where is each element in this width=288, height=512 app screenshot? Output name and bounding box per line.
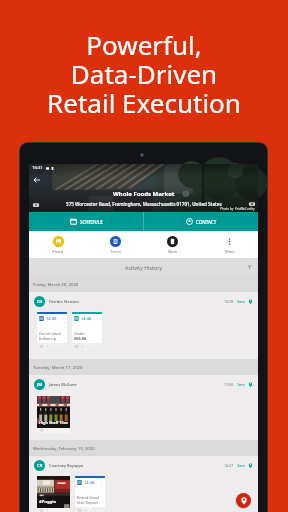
staticText: Form <box>111 249 121 254</box>
staticText: $66.06 <box>74 336 87 341</box>
staticText: Courtney Rayappu <box>49 463 84 468</box>
button[interactable]: DS <box>29 292 258 311</box>
staticText: Wednesday, February 19, 2020 <box>33 445 95 451</box>
staticText: CONTACT <box>196 219 217 225</box>
button[interactable]: CR <box>29 456 258 475</box>
button[interactable]: Check in <box>236 493 251 508</box>
staticText: 575 Worcester Road, Framingham, Massachu… <box>66 201 222 207</box>
staticText: Note <box>168 249 178 254</box>
staticText: CR <box>37 463 43 469</box>
staticText: High Shelf 16oz <box>39 420 68 425</box>
staticText: follow-up <box>39 336 57 341</box>
button[interactable]: Back <box>32 175 41 184</box>
button[interactable]: #Poggio <box>37 476 70 512</box>
button[interactable]: CONTACT <box>144 212 258 231</box>
staticText: 14:38 <box>84 480 95 485</box>
staticText: Order <box>74 331 85 336</box>
staticText: EricMcCarthy <box>235 207 255 211</box>
button[interactable]: 14:40 <box>72 312 102 349</box>
staticText: 14:40 <box>81 316 92 321</box>
staticText: Powerful, Data-Driven Retail Execution <box>0 32 288 119</box>
staticText: Brand Good <box>77 495 99 500</box>
staticText: Whole Foods Market <box>113 190 175 198</box>
button[interactable]: More <box>201 231 258 258</box>
staticText: Friday, March 20, 2020 <box>33 281 79 287</box>
staticText: Photo by <box>220 207 234 211</box>
staticText: 14:27 <box>224 463 234 468</box>
staticText: 1mn <box>237 382 245 387</box>
staticText: 3mn <box>237 299 245 304</box>
staticText: 16:31 <box>32 165 43 171</box>
staticText: SCHEDULE <box>80 219 103 225</box>
button[interactable]: SCHEDULE <box>29 212 143 231</box>
button[interactable]: High Shelf 16oz <box>37 396 70 433</box>
staticText: James McGuire <box>49 382 77 387</box>
staticText: 14:38 <box>224 299 234 304</box>
staticText: More <box>225 249 235 254</box>
button[interactable]: 14:38 <box>75 476 105 512</box>
button[interactable]: Form <box>87 231 144 258</box>
button[interactable]: JM <box>29 375 258 394</box>
staticText: Deirdre Stenson <box>49 299 79 304</box>
staticText: 14:40 <box>46 316 57 321</box>
button[interactable]: Note <box>144 231 201 258</box>
staticText: DS <box>37 299 43 305</box>
staticText: JM <box>37 382 43 388</box>
button[interactable]: 14:40 <box>37 312 67 349</box>
staticText: Out of stock <box>39 331 62 336</box>
staticText: Visit Report <box>77 500 98 505</box>
staticText: #Poggio <box>39 499 57 505</box>
staticText: 11:56 <box>224 382 234 387</box>
staticText: Activity History <box>125 264 163 271</box>
button[interactable]: Photo <box>29 231 87 258</box>
staticText: Tuesday, March 17, 2020 <box>33 364 83 370</box>
staticText: Photo <box>52 249 64 254</box>
staticText: 2mn <box>237 463 245 468</box>
button[interactable]: Filter <box>245 263 254 272</box>
other: More <box>224 236 235 247</box>
